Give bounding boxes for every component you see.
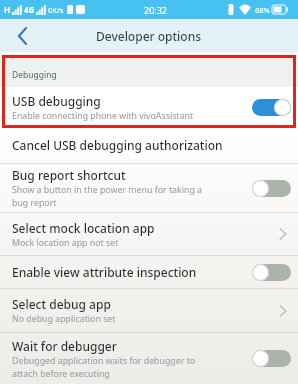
staticText: 0K/s (48, 5, 64, 15)
staticText: Debugging (12, 69, 57, 81)
button[interactable] (252, 180, 291, 197)
staticText: Enable view attribute inspection (12, 264, 197, 280)
staticText: Bug report shortcut (12, 167, 126, 183)
staticText: Show a button in the power menu for taki… (12, 184, 203, 196)
button[interactable] (252, 264, 291, 281)
staticText: Developer options (96, 28, 202, 44)
staticText: 68% (255, 5, 270, 15)
button[interactable]: Select debug app (0, 289, 298, 332)
button[interactable]: Cancel USB debugging authorization (0, 127, 298, 163)
staticText: Debugged application waits for debugger … (12, 355, 196, 367)
button[interactable] (252, 350, 291, 367)
staticText: Mock location app not set (12, 237, 119, 249)
staticText: 4G (24, 4, 35, 15)
staticText: attach before executing (12, 368, 110, 380)
staticText: Enable connecting phone with vivoAssista… (12, 110, 194, 122)
button[interactable]: USB debugging (0, 87, 298, 127)
button[interactable]: Wait for debugger (0, 333, 298, 384)
staticText: 20:32 (144, 4, 168, 16)
button[interactable]: Enable view attribute inspection (0, 256, 298, 288)
staticText: USB debugging (12, 93, 101, 109)
staticText: H (4, 4, 11, 15)
button[interactable] (10, 24, 34, 48)
staticText: Cancel USB debugging authorization (12, 137, 223, 153)
button[interactable]: Select mock location app (0, 213, 298, 255)
button[interactable] (252, 99, 291, 116)
staticText: Select mock location app (12, 220, 155, 236)
button[interactable]: Bug report shortcut (0, 164, 298, 212)
staticText: No debug application set (12, 313, 116, 325)
staticText: bug report (12, 197, 57, 209)
staticText: Select debug app (12, 296, 111, 312)
staticText: Wait for debugger (12, 338, 117, 354)
